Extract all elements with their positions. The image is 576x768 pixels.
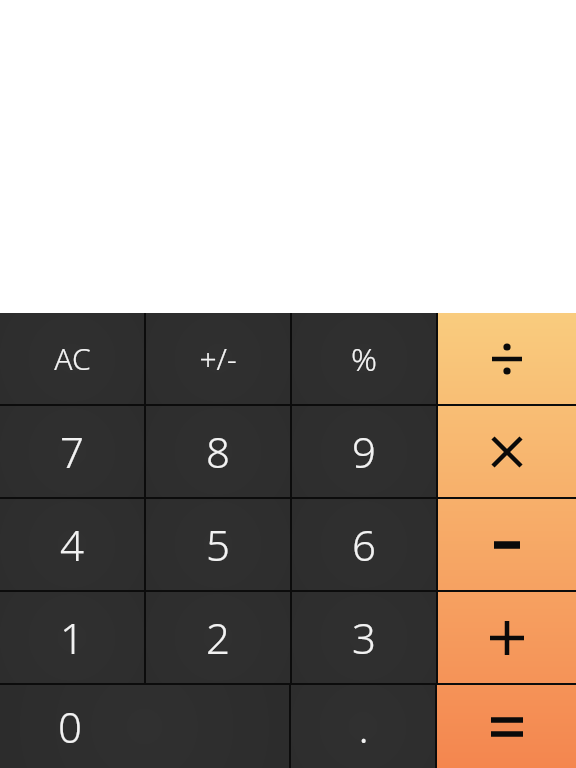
staticText: % bbox=[351, 337, 377, 381]
staticText: AC bbox=[54, 338, 91, 379]
staticText: 5 bbox=[206, 516, 230, 573]
staticText: 3 bbox=[352, 609, 376, 666]
button[interactable]: 2 bbox=[146, 592, 290, 683]
button[interactable]: AC bbox=[0, 313, 144, 404]
button[interactable]: 4 bbox=[0, 499, 144, 590]
staticText: 6 bbox=[352, 516, 376, 573]
button[interactable]: Add bbox=[438, 592, 576, 683]
button[interactable]: Subtract bbox=[438, 499, 576, 590]
staticText: 8 bbox=[206, 423, 230, 480]
button[interactable]: 9 bbox=[292, 406, 436, 497]
staticText: 1 bbox=[60, 609, 84, 666]
button[interactable]: 7 bbox=[0, 406, 144, 497]
staticText: 9 bbox=[352, 423, 376, 480]
button[interactable]: 3 bbox=[292, 592, 436, 683]
button[interactable]: 6 bbox=[292, 499, 436, 590]
staticText: +/- bbox=[199, 338, 237, 379]
staticText: 7 bbox=[60, 423, 84, 480]
button[interactable]: Multiply bbox=[438, 406, 576, 497]
staticText: . bbox=[358, 698, 369, 755]
button[interactable]: +/- bbox=[146, 313, 290, 404]
button[interactable]: . bbox=[291, 685, 435, 768]
button[interactable]: 1 bbox=[0, 592, 144, 683]
staticText: 0 bbox=[58, 698, 82, 755]
button[interactable]: 8 bbox=[146, 406, 290, 497]
button[interactable]: 0 bbox=[0, 685, 289, 768]
button[interactable]: Equals bbox=[437, 685, 576, 768]
button[interactable]: Divide bbox=[438, 313, 576, 404]
staticText: 2 bbox=[206, 609, 230, 666]
button[interactable]: % bbox=[292, 313, 436, 404]
staticText: 4 bbox=[60, 516, 84, 573]
button[interactable]: 5 bbox=[146, 499, 290, 590]
